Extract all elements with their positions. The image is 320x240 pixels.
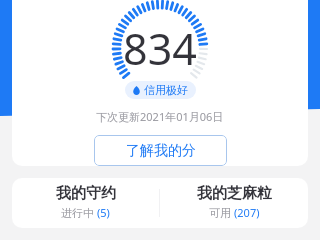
button[interactable]: 我的守约 [12,178,159,228]
staticText: (207) [234,205,260,220]
staticText: 进行中 [61,205,97,220]
staticText: 信用极好 [144,83,188,97]
other: Credit level [132,86,141,95]
staticText: 我的守约 [56,184,116,203]
staticText: 我的芝麻粒 [197,184,272,203]
button[interactable]: Credit level [125,81,196,99]
staticText: (5) [97,205,110,220]
staticText: 了解我的分 [126,142,196,160]
staticText: 可用 [209,205,234,220]
staticText: 下次更新2021年01月06日 [96,109,224,124]
button[interactable]: 我的芝麻粒 [160,178,308,228]
staticText: 834 [123,19,197,78]
button[interactable]: 了解我的分 [94,135,227,166]
